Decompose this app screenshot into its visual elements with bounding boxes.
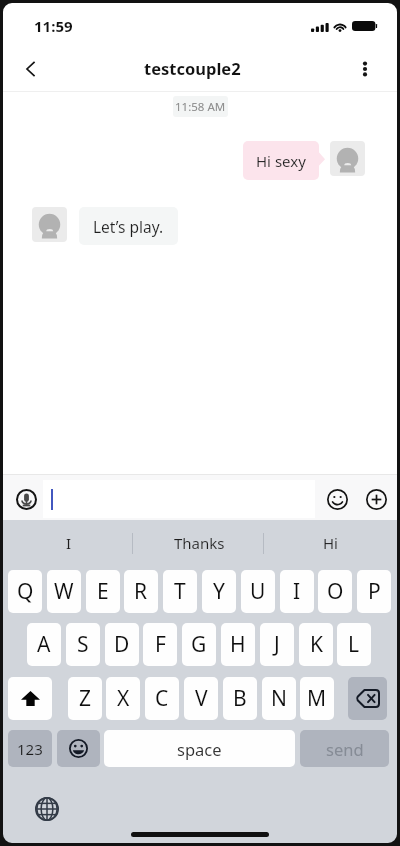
staticText: Let’s play. <box>93 216 164 237</box>
staticText: S <box>77 630 89 659</box>
button[interactable]: P <box>357 570 391 613</box>
staticText: B <box>233 684 247 713</box>
staticText: I <box>293 577 301 606</box>
button[interactable]: Change keyboard <box>32 794 62 824</box>
staticText: Q <box>17 577 34 606</box>
staticText: R <box>134 577 148 606</box>
button[interactable]: S <box>66 623 100 666</box>
button[interactable]: G <box>182 623 216 666</box>
button[interactable]: T <box>163 570 197 613</box>
button[interactable]: R <box>124 570 158 613</box>
button[interactable]: A <box>27 623 61 666</box>
button[interactable]: Back <box>9 47 53 91</box>
button[interactable]: W <box>47 570 81 613</box>
staticText: P <box>368 577 381 606</box>
staticText: E <box>97 577 109 606</box>
staticText: D <box>114 630 130 659</box>
button[interactable]: Add attachment <box>363 486 390 513</box>
button[interactable]: Voice message <box>13 486 40 513</box>
staticText: Y <box>213 577 225 606</box>
staticText: A <box>37 630 51 659</box>
staticText: U <box>250 577 266 606</box>
button[interactable]: E <box>86 570 120 613</box>
staticText: I <box>66 533 72 553</box>
button[interactable]: I <box>5 520 133 566</box>
staticText: W <box>54 577 74 606</box>
button[interactable]: Hi <box>266 520 394 566</box>
staticText: T <box>174 577 186 606</box>
staticText: testcouple2 <box>144 57 241 79</box>
staticText: Thanks <box>174 533 225 553</box>
button[interactable]: Z <box>68 677 102 720</box>
button[interactable] <box>43 480 315 518</box>
staticText: space <box>177 738 222 760</box>
button[interactable]: Thanks <box>135 520 263 566</box>
staticText: J <box>274 630 280 659</box>
button[interactable]: Y <box>202 570 236 613</box>
button[interactable]: V <box>184 677 218 720</box>
button[interactable]: Hi sexy <box>243 141 319 180</box>
button[interactable]: B <box>223 677 257 720</box>
staticText: 11:58 AM <box>175 99 226 115</box>
button[interactable]: K <box>299 623 333 666</box>
button[interactable]: U <box>241 570 275 613</box>
staticText: V <box>195 684 208 713</box>
button[interactable]: C <box>145 677 179 720</box>
button[interactable]: M <box>300 677 334 720</box>
button[interactable]: L <box>337 623 371 666</box>
staticText: C <box>155 684 169 713</box>
staticText: G <box>191 630 207 659</box>
staticText: O <box>327 577 344 606</box>
staticText: H <box>230 630 246 659</box>
button[interactable]: 123 <box>8 730 52 767</box>
staticText: K <box>310 630 323 659</box>
button[interactable]: X <box>106 677 140 720</box>
button[interactable]: I <box>280 570 314 613</box>
staticText: X <box>117 684 130 713</box>
button[interactable]: Let’s play. <box>79 207 178 245</box>
staticText: send <box>326 738 364 760</box>
button[interactable]: Emoji keyboard <box>57 730 100 767</box>
button[interactable]: Backspace <box>348 677 387 720</box>
button[interactable]: O <box>318 570 352 613</box>
staticText: Z <box>79 684 92 713</box>
button[interactable]: More options <box>343 47 387 91</box>
staticText: N <box>271 684 287 713</box>
staticText: Hi <box>323 533 338 553</box>
button[interactable]: Emoji <box>324 486 351 513</box>
button[interactable]: N <box>262 677 296 720</box>
staticText: L <box>348 630 360 659</box>
button[interactable]: D <box>105 623 139 666</box>
button[interactable]: Q <box>8 570 42 613</box>
button[interactable]: Shift <box>8 677 52 720</box>
button[interactable]: send <box>300 730 389 767</box>
button[interactable]: F <box>143 623 177 666</box>
staticText: 11:59 <box>34 16 73 36</box>
button[interactable]: H <box>221 623 255 666</box>
button[interactable]: J <box>260 623 294 666</box>
staticText: Hi sexy <box>256 151 306 171</box>
staticText: M <box>307 684 327 713</box>
staticText: F <box>155 630 166 659</box>
button[interactable]: space <box>104 730 295 767</box>
staticText: 123 <box>17 739 43 759</box>
